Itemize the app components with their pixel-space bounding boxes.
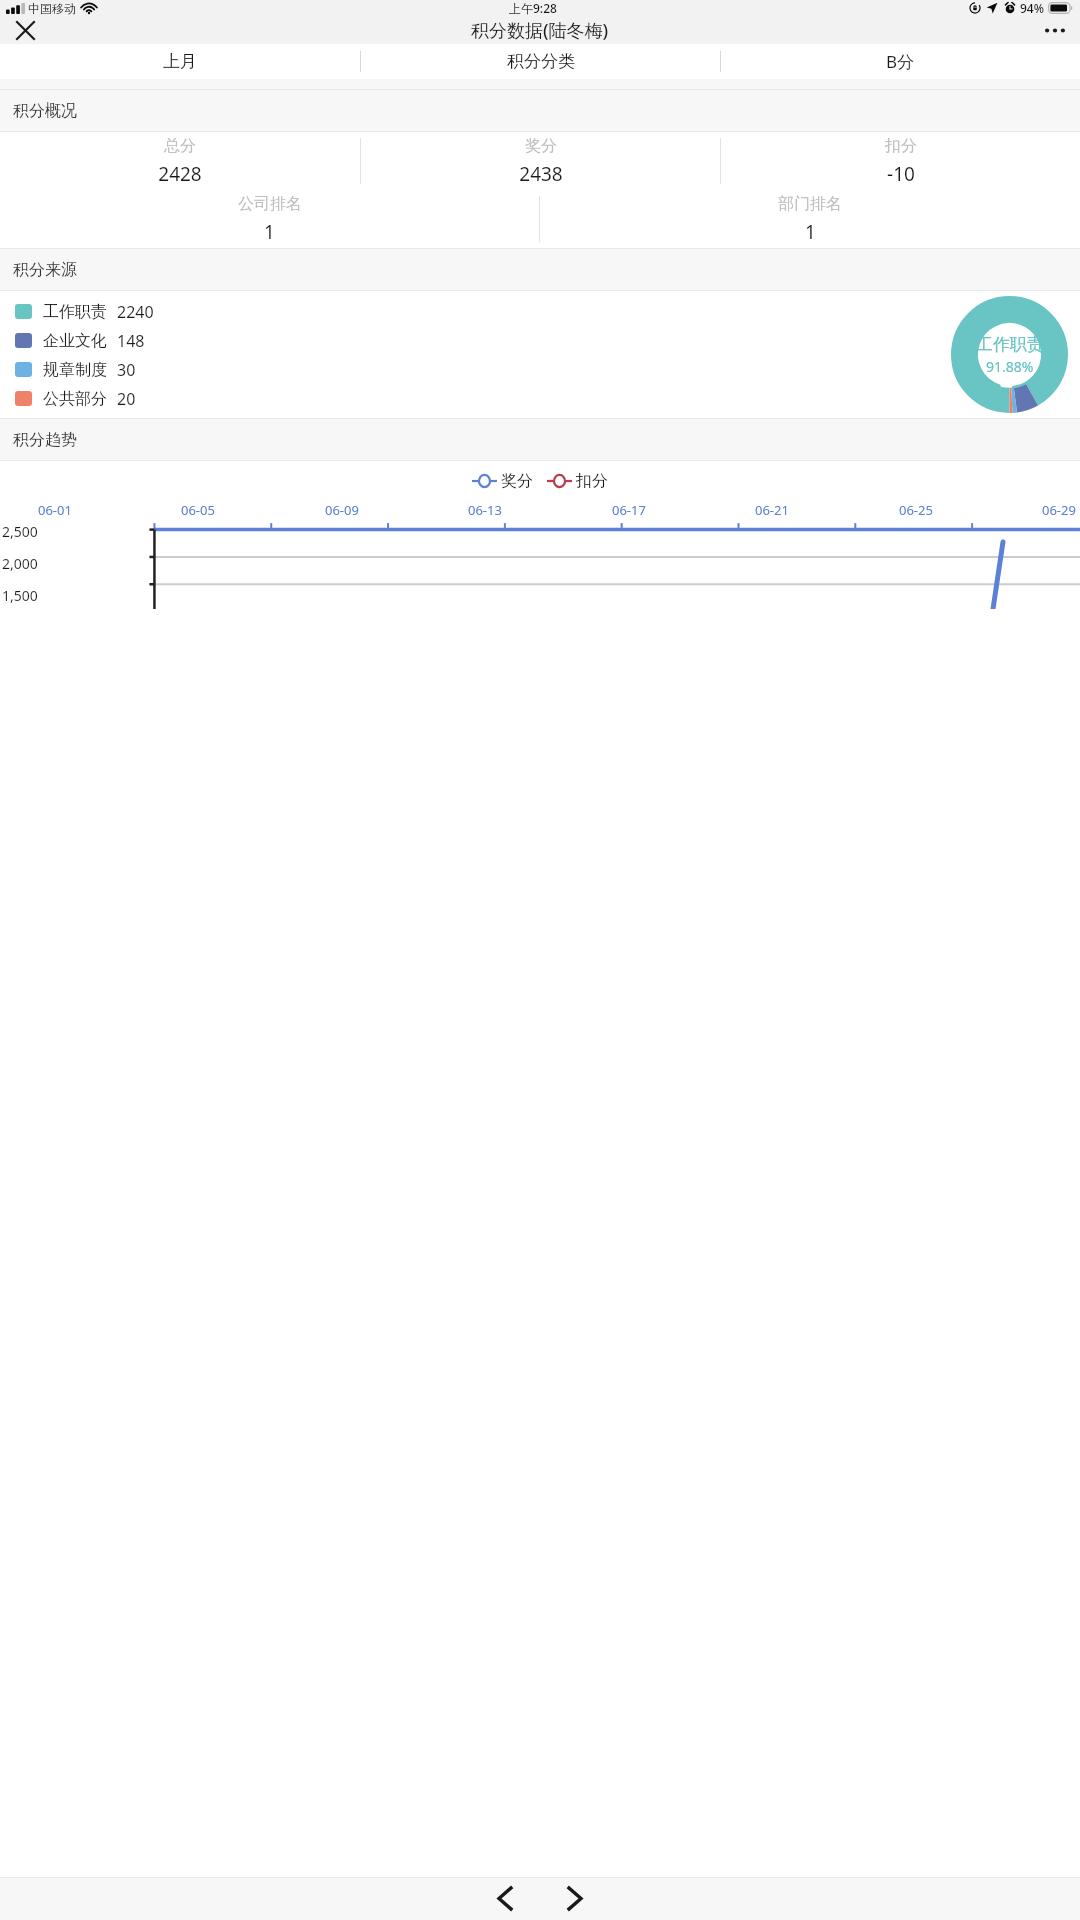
staticText: 20: [117, 388, 136, 410]
button[interactable]: B分: [721, 44, 1080, 79]
staticText: 积分分类: [507, 51, 575, 72]
staticText: 扣分: [576, 471, 608, 491]
staticText: 06-05: [181, 501, 215, 519]
staticText: 扣分: [885, 136, 917, 156]
button[interactable]: 工作职责: [15, 297, 154, 326]
staticText: 2240: [117, 301, 154, 323]
button[interactable]: 企业文化: [15, 326, 145, 355]
staticText: 公司排名: [238, 194, 302, 214]
staticText: 06-13: [468, 501, 502, 519]
staticText: 1: [805, 219, 816, 245]
button[interactable]: 上一页: [481, 1877, 529, 1920]
button[interactable]: 关闭: [8, 16, 42, 44]
staticText: 148: [117, 330, 145, 352]
staticText: 91.88%: [986, 357, 1034, 376]
button[interactable]: 总分: [0, 132, 360, 190]
button[interactable]: 上月: [0, 44, 360, 79]
staticText: -10: [887, 161, 915, 187]
staticText: 06-25: [899, 501, 933, 519]
button[interactable]: 公共部分: [15, 384, 136, 413]
button[interactable]: 扣分: [547, 471, 608, 491]
button[interactable]: 积分分类: [361, 44, 720, 79]
staticText: 奖分: [501, 471, 533, 491]
button[interactable]: 奖分: [472, 471, 533, 491]
staticText: 公共部分: [43, 389, 107, 409]
staticText: 1,500: [2, 586, 38, 605]
button[interactable]: 规章制度: [15, 355, 136, 384]
button[interactable]: 奖分: [361, 132, 720, 190]
staticText: 积分来源: [13, 260, 77, 280]
staticText: 积分概况: [13, 101, 77, 121]
staticText: 奖分: [525, 136, 557, 156]
staticText: 2,000: [2, 554, 38, 573]
staticText: 积分数据(陆冬梅): [471, 18, 609, 43]
staticText: 1: [264, 219, 275, 245]
staticText: 企业文化: [43, 331, 107, 351]
button[interactable]: 更多: [1038, 16, 1072, 44]
staticText: 06-29: [1042, 501, 1076, 519]
staticText: 工作职责: [976, 334, 1044, 355]
button[interactable]: 部门排名: [540, 190, 1080, 248]
staticText: 上月: [163, 51, 197, 72]
staticText: 94%: [1020, 0, 1044, 16]
button[interactable]: 扣分: [721, 132, 1080, 190]
staticText: 部门排名: [778, 194, 842, 214]
button[interactable]: 公司排名: [0, 190, 539, 248]
staticText: 积分趋势: [13, 430, 77, 450]
staticText: 06-17: [612, 501, 646, 519]
staticText: 2428: [158, 161, 202, 187]
staticText: 中国移动: [28, 1, 76, 16]
staticText: 06-01: [38, 501, 72, 519]
staticText: 06-21: [755, 501, 789, 519]
button[interactable]: 下一页: [551, 1877, 599, 1920]
staticText: 总分: [164, 136, 196, 156]
staticText: 规章制度: [43, 360, 107, 380]
staticText: 06-09: [325, 501, 359, 519]
staticText: 2,500: [2, 522, 38, 541]
staticText: B分: [886, 50, 915, 73]
staticText: 工作职责: [43, 302, 107, 322]
staticText: 2438: [519, 161, 563, 187]
staticText: 30: [117, 359, 136, 381]
staticText: 上午9:28: [509, 0, 557, 16]
